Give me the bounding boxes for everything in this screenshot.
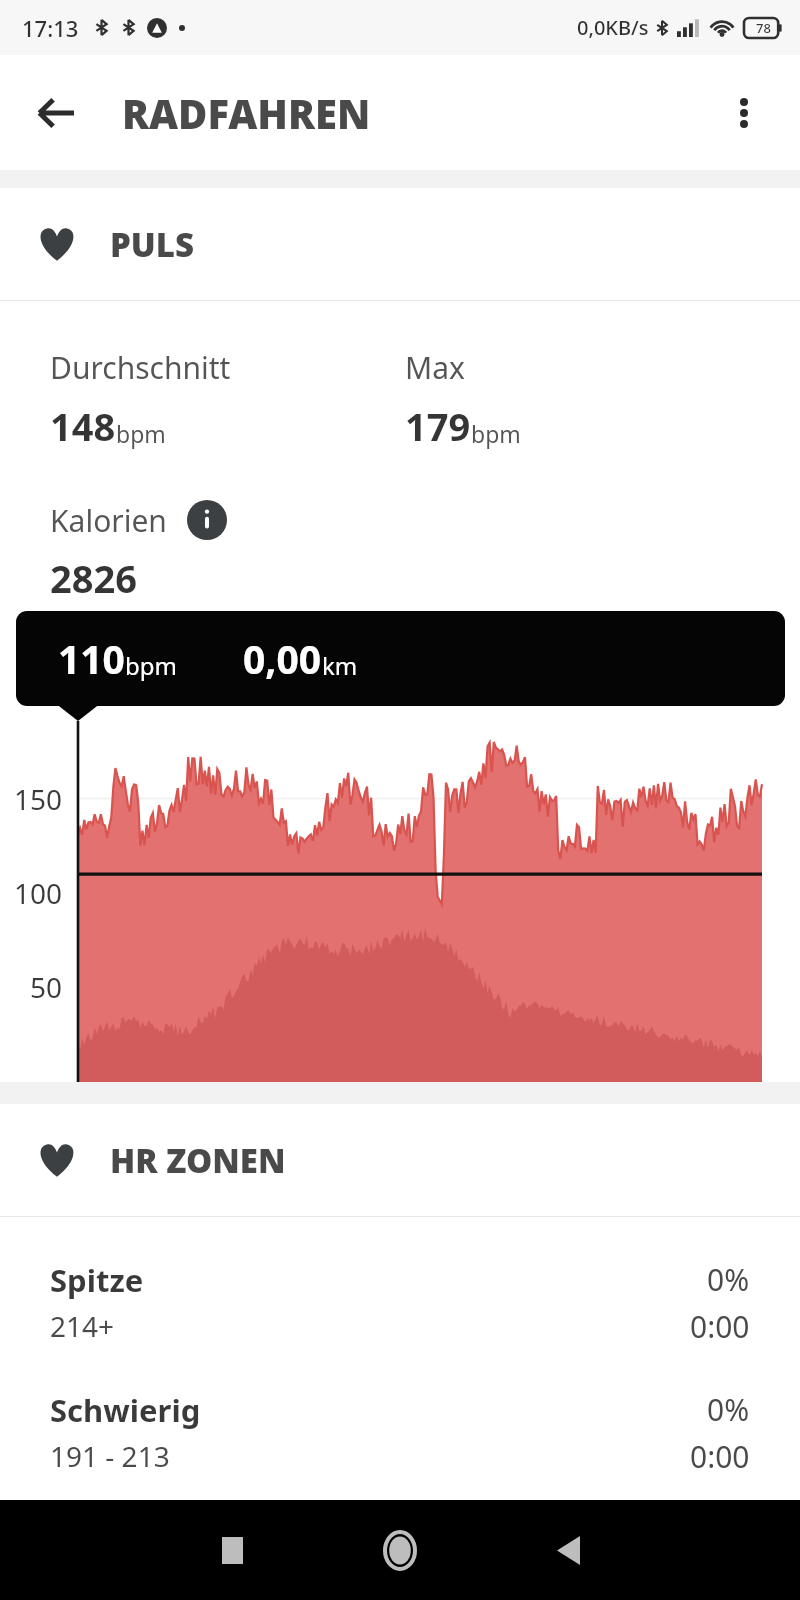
staticText: 0% [707,1259,750,1300]
button[interactable]: HR ZONEN [0,1104,800,1216]
button[interactable]: Back [24,81,88,145]
staticText: 0% [707,1389,750,1430]
button[interactable]: More options [712,81,776,145]
staticText: km [322,649,358,682]
button[interactable]: Spitze [0,1259,800,1347]
button[interactable]: Schwierig [0,1389,800,1477]
staticText: 2826 [50,552,137,604]
staticText: RADFAHREN [122,86,371,140]
button[interactable]: PULS [0,188,800,300]
staticText: Durchschnitt [50,347,231,388]
staticText: 0,0KB/s [577,14,649,41]
staticText: bpm [125,649,177,682]
button[interactable]: Recent apps [187,1505,277,1595]
staticText: 0:00 [690,1436,750,1477]
button[interactable]: Back [523,1505,613,1595]
staticText: 191 - 213 [50,1437,170,1475]
staticText: Max [405,347,465,388]
staticText: Kalorien [50,500,167,541]
staticText: bpm [116,418,166,449]
staticText: 100 [14,874,63,912]
staticText: 17:13 [22,13,79,43]
staticText: PULS [110,222,195,267]
button[interactable]: Home [355,1505,445,1595]
staticText: 78 [756,19,771,37]
staticText: 148 [50,400,116,452]
staticText: 110 [58,632,125,685]
staticText: HR ZONEN [110,1138,286,1183]
staticText: 50 [30,968,63,1006]
staticText: 214+ [50,1307,115,1345]
staticText: 150 [14,780,63,818]
button[interactable]: 110 [16,611,785,706]
staticText: Schwierig [50,1389,201,1431]
staticText: 0,00 [243,632,322,685]
staticText: bpm [471,418,521,449]
staticText: 179 [405,400,471,452]
staticText: 0:00 [690,1306,750,1347]
button[interactable]: Info [185,498,229,542]
staticText: Spitze [50,1259,144,1301]
